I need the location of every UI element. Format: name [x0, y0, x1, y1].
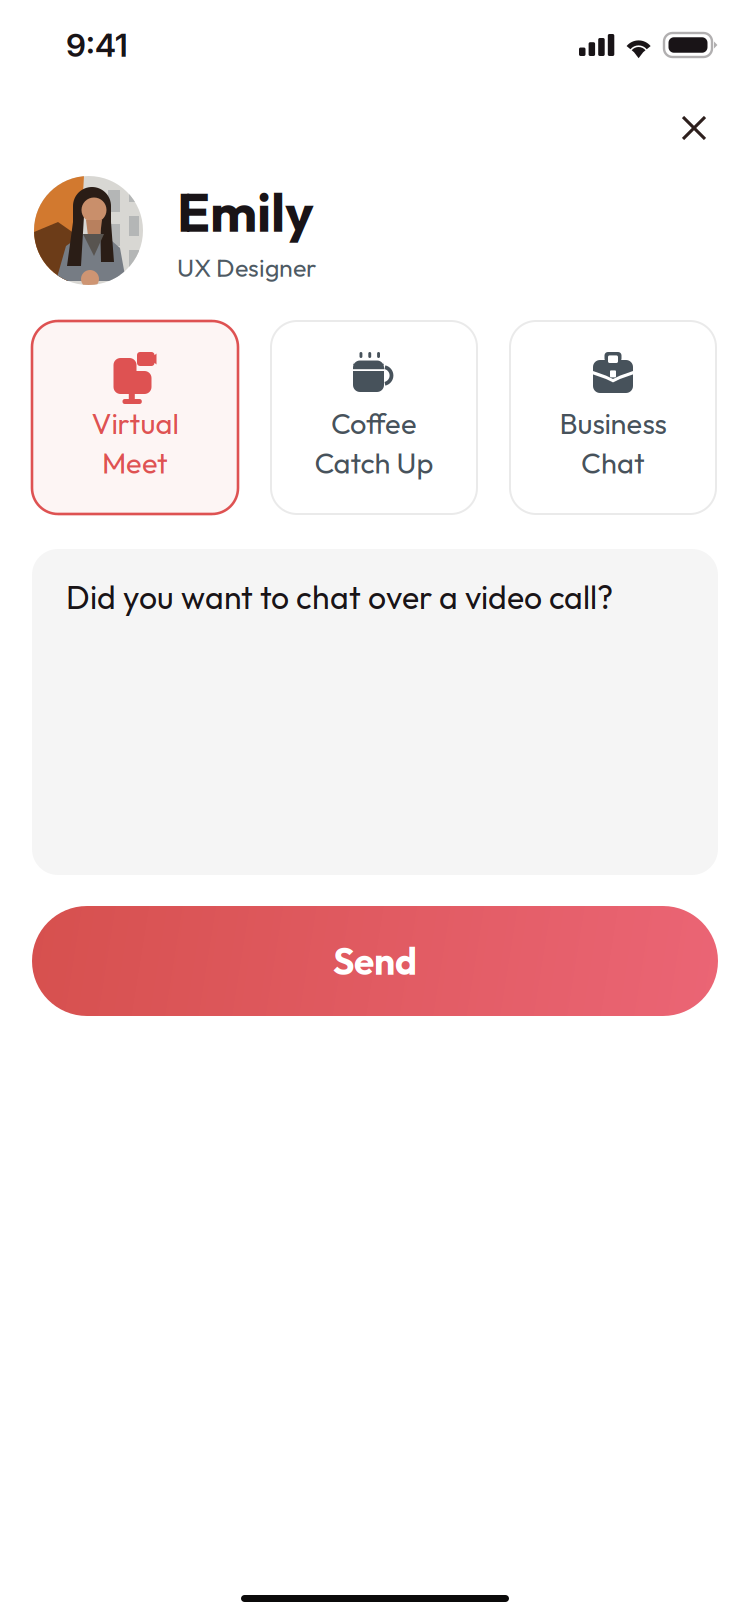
staticText: Meet	[102, 444, 168, 481]
staticText: 9:41	[66, 26, 128, 64]
staticText: Send	[333, 938, 417, 984]
staticText: Chat	[581, 444, 645, 481]
button[interactable]: Virtual	[32, 321, 238, 514]
staticText: Emily	[177, 178, 314, 246]
staticText: Coffee	[331, 405, 417, 441]
staticText: Did you want to chat over a video call?	[66, 577, 613, 617]
staticText: Catch Up	[314, 444, 433, 481]
button[interactable]: Send	[32, 906, 718, 1016]
staticText: UX Designer	[177, 252, 316, 283]
staticText: Business	[559, 405, 666, 441]
button[interactable]: Business	[510, 321, 716, 514]
staticText: Virtual	[91, 405, 178, 441]
button[interactable]: Coffee	[271, 321, 477, 514]
button[interactable]: Close	[667, 101, 721, 155]
